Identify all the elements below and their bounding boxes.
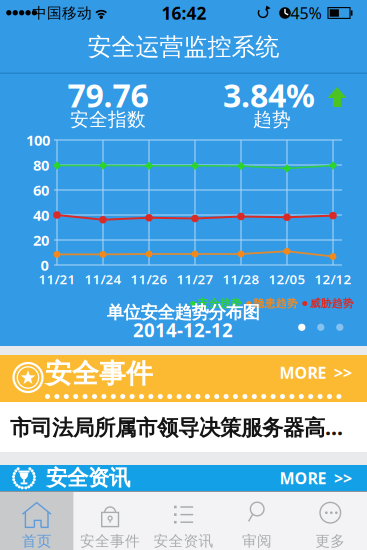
- staticText: MORE: [279, 467, 326, 489]
- staticText: 2014-12-12: [133, 318, 233, 342]
- button[interactable]: 安全事件: [73, 491, 147, 550]
- button[interactable]: 安全事件: [0, 355, 367, 402]
- staticText: 0: [40, 255, 48, 275]
- staticText: 单位安全趋势分布图: [106, 302, 259, 323]
- staticText: 3.84%: [223, 74, 315, 116]
- staticText: 45%: [290, 2, 321, 24]
- staticText: 安全运营监控系统: [87, 32, 279, 62]
- staticText: 100: [26, 130, 50, 150]
- staticText: 11/28: [222, 270, 259, 288]
- button[interactable]: 首页: [0, 491, 73, 550]
- staticText: 40: [33, 205, 49, 225]
- staticText: >>: [334, 467, 352, 489]
- staticText: 60: [33, 180, 49, 200]
- button[interactable]: 安全资讯: [147, 491, 220, 550]
- staticText: 安全资讯: [46, 465, 130, 491]
- staticText: 16:42: [161, 1, 206, 24]
- staticText: 安全趋势: [198, 297, 242, 310]
- staticText: 20: [33, 230, 49, 250]
- staticText: 威胁趋势: [310, 297, 354, 310]
- staticText: MORE: [279, 362, 326, 383]
- staticText: 安全事件: [45, 357, 153, 390]
- staticText: 12/12: [314, 270, 351, 288]
- staticText: 审阅: [242, 532, 272, 550]
- staticText: 11/27: [176, 270, 213, 288]
- staticText: 市司法局所属市领导决策服务器高...: [10, 413, 343, 441]
- staticText: 11/21: [38, 270, 75, 288]
- staticText: >>: [334, 362, 352, 383]
- staticText: 安全资讯: [153, 532, 213, 550]
- staticText: 79.76: [67, 74, 148, 116]
- staticText: 12/05: [268, 270, 305, 288]
- button[interactable]: 审阅: [220, 491, 294, 550]
- staticText: 趋势: [253, 108, 291, 131]
- staticText: 安全事件: [80, 532, 140, 550]
- button[interactable]: 安全资讯: [0, 465, 367, 491]
- staticText: 更多: [315, 532, 345, 550]
- staticText: 11/26: [130, 270, 167, 288]
- staticText: 80: [33, 155, 49, 175]
- staticText: 首页: [22, 532, 52, 550]
- staticText: 安全指数: [70, 108, 146, 131]
- staticText: 隐患趋势: [254, 297, 298, 310]
- staticText: 11/24: [84, 270, 121, 288]
- staticText: 中国移动: [32, 4, 92, 22]
- button[interactable]: 市司法局所属市领导决策服务器高...: [0, 402, 367, 452]
- button[interactable]: 更多: [294, 491, 367, 550]
